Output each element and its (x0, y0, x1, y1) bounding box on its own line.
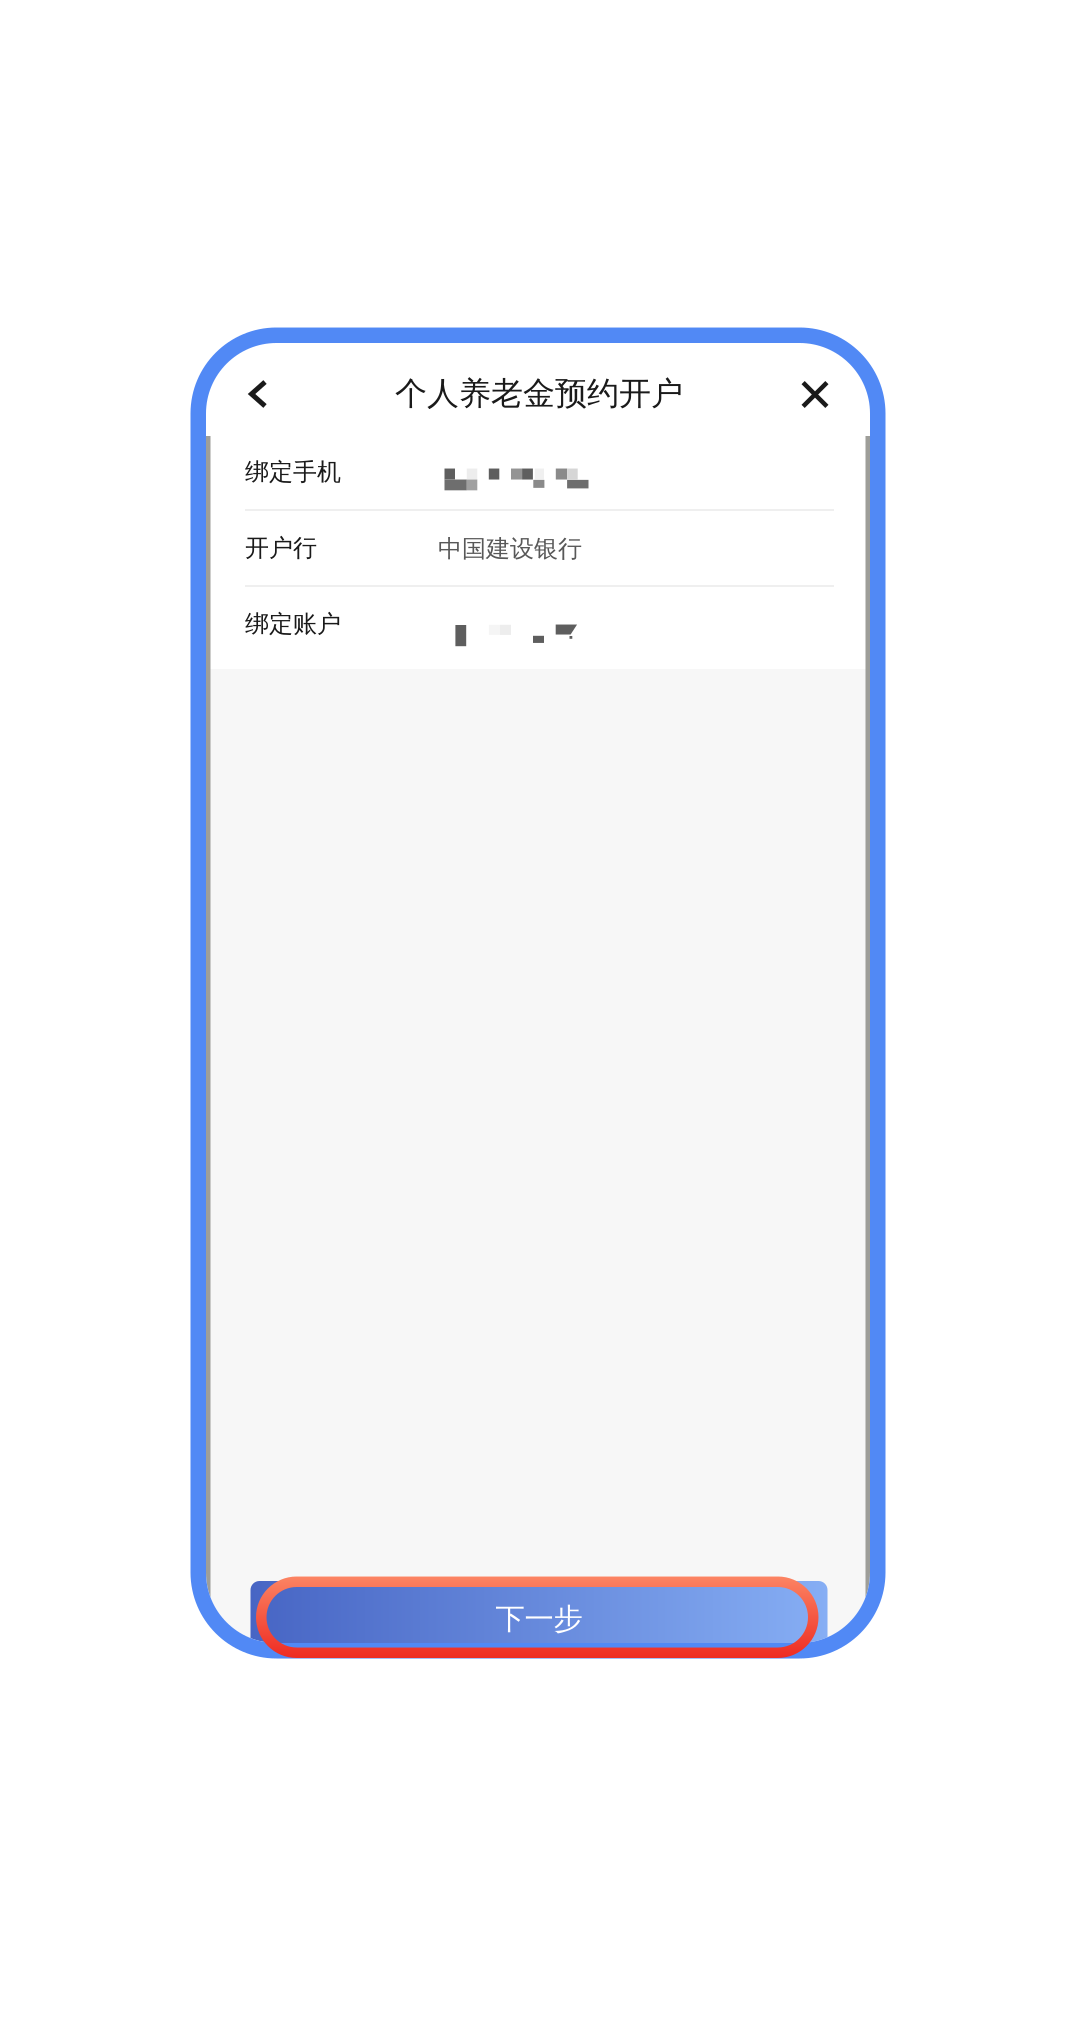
staticText: 绑定手机 (245, 457, 341, 487)
staticText: 个人养老金预约开户 (395, 374, 683, 413)
staticText: 下一步 (495, 1601, 582, 1637)
button[interactable]: Back (222, 347, 294, 440)
button[interactable]: Close (779, 348, 851, 441)
staticText: 开户行 (245, 533, 317, 563)
button[interactable]: 下一步 (250, 1581, 827, 1657)
staticText: 中国建设银行 (438, 534, 582, 563)
staticText: 绑定账户 (245, 609, 341, 639)
